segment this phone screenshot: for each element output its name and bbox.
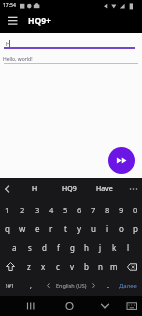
button[interactable]: !#1	[1, 276, 19, 295]
button[interactable]	[124, 296, 140, 316]
button[interactable]	[62, 296, 78, 316]
staticText: Have	[96, 184, 113, 194]
staticText: t	[64, 223, 67, 234]
button[interactable]: q	[0, 219, 15, 238]
staticText: 2	[20, 205, 25, 215]
button[interactable]: 7	[86, 200, 100, 219]
staticText: HQ9	[62, 184, 77, 194]
button[interactable]: 6	[72, 200, 86, 219]
button[interactable]: 1	[0, 200, 15, 219]
button[interactable]: ,	[26, 276, 36, 295]
button[interactable]: e	[30, 219, 44, 238]
button[interactable]: c	[51, 257, 65, 276]
staticText: b	[84, 261, 89, 272]
button[interactable]: Далее	[114, 276, 141, 295]
button[interactable]: y	[72, 219, 86, 238]
staticText: c	[56, 261, 60, 272]
button[interactable]: j	[93, 238, 107, 257]
staticText: l	[127, 242, 130, 253]
button[interactable]: g	[65, 238, 79, 257]
button[interactable]: 8	[100, 200, 114, 219]
button[interactable]: 9	[114, 200, 128, 219]
staticText: q	[5, 223, 10, 234]
button[interactable]: d	[37, 238, 51, 257]
button[interactable]: z	[21, 257, 36, 276]
button[interactable]: 4	[44, 200, 58, 219]
button[interactable]: English (US)	[0, 276, 142, 295]
button[interactable]	[97, 296, 113, 316]
staticText: d	[42, 242, 47, 253]
button[interactable]: f	[51, 238, 65, 257]
staticText: HQ9+	[28, 15, 51, 27]
button[interactable]: t	[58, 219, 72, 238]
button[interactable]: .	[103, 276, 113, 295]
button[interactable]: n	[93, 257, 107, 276]
staticText: H	[6, 40, 11, 47]
staticText: 5	[63, 205, 68, 215]
button[interactable]: u	[86, 219, 100, 238]
staticText: h	[84, 242, 89, 253]
staticText: y	[77, 223, 82, 234]
button[interactable]: b	[79, 257, 93, 276]
staticText: 8	[105, 205, 110, 215]
button[interactable]: 2	[15, 200, 30, 219]
staticText: Далее	[119, 282, 137, 290]
staticText: g	[70, 242, 75, 253]
staticText: 4	[49, 205, 54, 215]
button[interactable]: k	[107, 238, 121, 257]
staticText: r	[49, 223, 53, 234]
staticText: 1	[5, 205, 10, 215]
staticText: !#1	[6, 282, 15, 289]
staticText: 3	[35, 205, 40, 215]
button[interactable]: H	[24, 178, 46, 200]
staticText: p	[133, 223, 138, 234]
staticText: w	[19, 223, 26, 234]
staticText: f	[57, 242, 60, 253]
button[interactable]: m	[107, 257, 121, 276]
button[interactable]: 5	[58, 200, 72, 219]
staticText: m	[110, 261, 118, 272]
staticText: e	[35, 223, 40, 234]
button[interactable]: p	[128, 219, 142, 238]
button[interactable]: Have	[91, 178, 117, 200]
button[interactable]: w	[15, 219, 30, 238]
button[interactable]: HQ9	[56, 178, 82, 200]
button[interactable]: v	[65, 257, 79, 276]
staticText: 6	[77, 205, 82, 215]
staticText: i	[106, 223, 109, 234]
staticText: k	[112, 242, 117, 253]
staticText: x	[41, 261, 46, 272]
staticText: n	[98, 261, 103, 272]
staticText: v	[70, 261, 75, 272]
button[interactable]	[0, 257, 21, 276]
button[interactable]: l	[121, 238, 135, 257]
staticText: H	[32, 184, 38, 194]
button[interactable]: a	[7, 238, 22, 257]
staticText: u	[91, 223, 96, 234]
staticText: 7	[91, 205, 96, 215]
staticText: 9	[119, 205, 124, 215]
button[interactable]: i	[100, 219, 114, 238]
staticText: j	[99, 242, 102, 253]
button[interactable]: 0	[128, 200, 142, 219]
button[interactable]: x	[36, 257, 51, 276]
staticText: z	[27, 261, 31, 272]
button[interactable]	[22, 296, 38, 316]
staticText: 0	[133, 205, 138, 215]
button[interactable]	[4, 16, 18, 30]
button[interactable]	[108, 147, 135, 174]
button[interactable]: r	[44, 219, 58, 238]
staticText: English (US)	[56, 282, 87, 289]
staticText: ,	[30, 281, 32, 291]
button[interactable]: o	[114, 219, 128, 238]
button[interactable]: h	[79, 238, 93, 257]
staticText: a	[12, 242, 17, 253]
button[interactable]: s	[22, 238, 37, 257]
button[interactable]: 3	[30, 200, 44, 219]
button[interactable]	[121, 257, 142, 276]
button[interactable]	[124, 178, 142, 200]
button[interactable]	[0, 178, 16, 200]
staticText: .	[107, 281, 109, 291]
staticText: 17:54	[3, 2, 16, 9]
